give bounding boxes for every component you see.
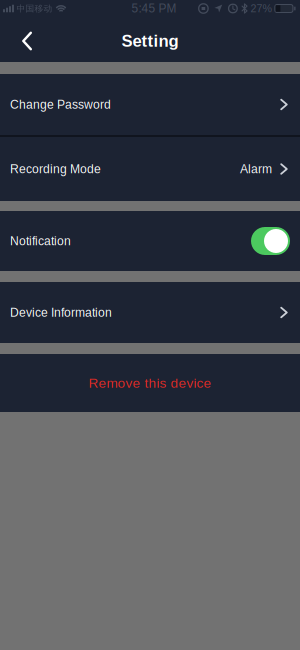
button[interactable]: Notification [0,211,300,271]
staticText: Setting [121,32,178,50]
staticText: 中国移动 [16,3,52,14]
staticText: 5:45 PM [131,2,176,15]
button[interactable]: Back [0,31,44,50]
button[interactable]: Device Information [0,282,300,343]
staticText: Alarm [240,162,272,176]
button[interactable]: Remove this device [0,354,300,412]
button[interactable]: Recording Mode [0,137,300,201]
staticText: Notification [10,234,71,248]
staticText: Recording Mode [10,162,101,176]
button[interactable]: Notification on [249,227,288,255]
staticText: 27% [250,2,271,14]
staticText: Device Information [10,306,112,319]
staticText: Change Password [10,98,111,111]
staticText: Remove this device [88,375,211,391]
button[interactable]: Change Password [0,74,300,135]
